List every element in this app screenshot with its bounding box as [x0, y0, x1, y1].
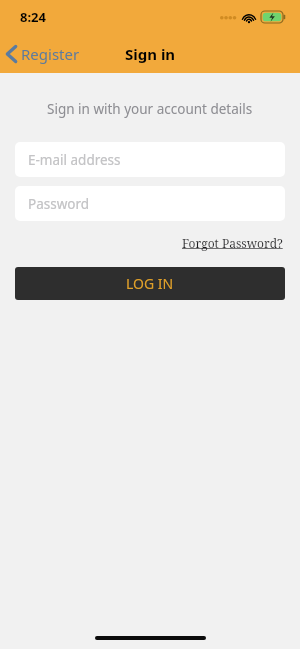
button[interactable]: Forgot Password? [180, 233, 285, 253]
other: Battery charging [261, 11, 286, 23]
staticText: E-mail address [28, 151, 121, 169]
other: Wi-Fi [242, 12, 256, 23]
staticText: Sign in with your account details [47, 100, 253, 118]
staticText: Forgot Password? [182, 235, 283, 251]
button[interactable]: Password [15, 186, 285, 221]
staticText: LOG IN [126, 274, 174, 293]
button[interactable]: E-mail address [15, 142, 285, 177]
staticText: 8:24 [20, 8, 46, 26]
staticText: Password [28, 195, 90, 213]
staticText: Register [21, 44, 80, 64]
other: Cellular signal [220, 14, 237, 20]
button[interactable]: LOG IN [15, 267, 285, 300]
staticText: Sign in [125, 44, 176, 64]
button[interactable]: Register [0, 40, 90, 68]
